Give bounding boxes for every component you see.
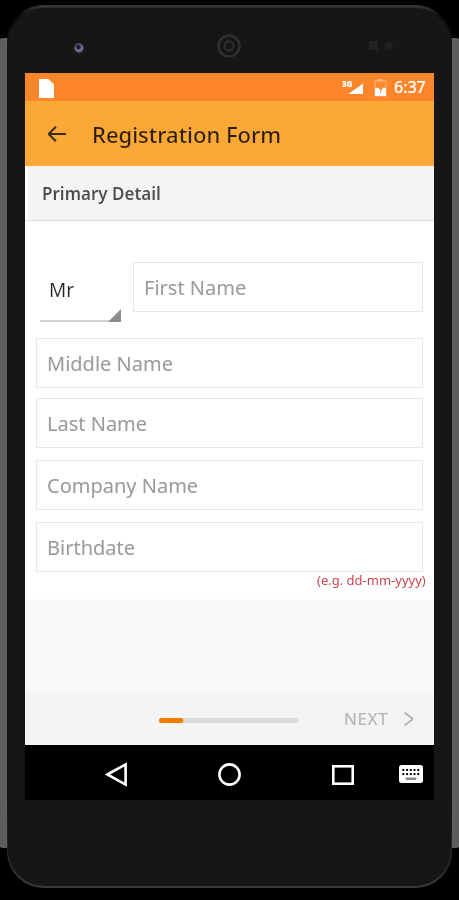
button[interactable]: Middle Name xyxy=(36,338,423,388)
staticText: (e.g. dd-mm-yyyy) xyxy=(317,571,426,589)
button[interactable]: Recent apps xyxy=(318,747,368,802)
staticText: Primary Detail xyxy=(42,182,161,205)
button[interactable]: Home xyxy=(204,747,254,802)
button[interactable]: Back xyxy=(39,116,74,151)
button[interactable]: Back xyxy=(91,747,141,802)
staticText: Birthdate xyxy=(47,534,136,561)
staticText: NEXT xyxy=(344,707,389,730)
staticText: Mr xyxy=(49,277,75,303)
button[interactable]: NEXT xyxy=(344,707,413,730)
staticText: 6:37 xyxy=(394,76,426,98)
button[interactable]: Keyboard xyxy=(387,746,435,801)
staticText: Last Name xyxy=(47,410,148,437)
staticText: Middle Name xyxy=(47,350,173,377)
staticText: 3G xyxy=(342,78,353,89)
button[interactable]: First Name xyxy=(133,262,423,312)
button[interactable]: Company Name xyxy=(36,460,423,510)
button[interactable]: Birthdate xyxy=(36,522,423,572)
staticText: First Name xyxy=(144,274,247,301)
button[interactable]: Last Name xyxy=(36,398,423,448)
button[interactable]: Mr xyxy=(40,271,121,322)
staticText: Company Name xyxy=(47,472,199,499)
staticText: Registration Form xyxy=(92,119,282,149)
